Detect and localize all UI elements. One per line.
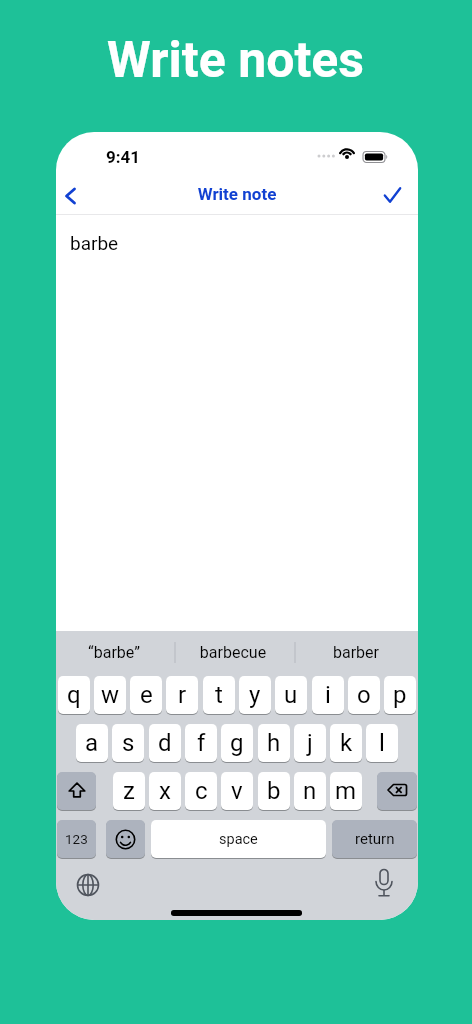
staticText: l	[379, 729, 385, 757]
staticText: u	[284, 681, 298, 709]
staticText: i	[325, 681, 331, 709]
staticText: n	[303, 777, 317, 805]
button[interactable]: x	[149, 772, 181, 810]
button[interactable]: c	[185, 772, 217, 810]
button[interactable]: t	[203, 676, 235, 714]
button[interactable]	[372, 868, 396, 902]
staticText: return	[355, 830, 395, 848]
staticText: q	[67, 681, 81, 709]
button[interactable]: s	[112, 724, 144, 762]
button[interactable]	[56, 176, 96, 212]
staticText: 9:41	[100, 147, 146, 167]
staticText: Write note	[56, 184, 418, 204]
button[interactable]: 123	[57, 820, 96, 858]
button[interactable]: a	[76, 724, 108, 762]
button[interactable]: barber	[316, 643, 396, 662]
button[interactable]: p	[384, 676, 416, 714]
staticText: k	[340, 729, 353, 757]
staticText: a	[85, 729, 99, 757]
staticText: h	[267, 729, 281, 757]
staticText: m	[335, 777, 357, 805]
staticText: o	[357, 681, 371, 709]
button[interactable]	[106, 820, 145, 858]
button[interactable]: m	[330, 772, 362, 810]
staticText: r	[178, 681, 187, 709]
button[interactable]: barbecue	[193, 643, 273, 662]
staticText: j	[307, 729, 313, 757]
staticText: e	[140, 681, 153, 709]
button[interactable]: return	[332, 820, 417, 858]
staticText: c	[195, 777, 208, 805]
button[interactable]: i	[312, 676, 344, 714]
staticText: f	[197, 729, 206, 757]
button[interactable]: r	[166, 676, 198, 714]
staticText: d	[158, 729, 172, 757]
staticText: Write notes	[107, 31, 365, 90]
staticText: v	[231, 777, 243, 805]
button[interactable]: h	[258, 724, 290, 762]
button[interactable]: b	[258, 772, 290, 810]
button[interactable]: y	[239, 676, 271, 714]
button[interactable]: j	[294, 724, 326, 762]
staticText: t	[215, 681, 223, 709]
staticText: x	[159, 777, 171, 805]
staticText: w	[101, 681, 120, 709]
button[interactable]: w	[94, 676, 126, 714]
button[interactable]	[57, 772, 96, 810]
button[interactable]: n	[294, 772, 326, 810]
button[interactable]: v	[221, 772, 253, 810]
button[interactable]: g	[221, 724, 253, 762]
staticText: z	[123, 777, 135, 805]
button[interactable]: d	[149, 724, 181, 762]
staticText: b	[267, 777, 281, 805]
staticText: g	[230, 729, 244, 757]
button[interactable]: z	[113, 772, 145, 810]
staticText: barbe	[70, 232, 119, 254]
button[interactable]: f	[185, 724, 217, 762]
button[interactable]: l	[366, 724, 398, 762]
button[interactable]: o	[348, 676, 380, 714]
staticText: space	[219, 831, 258, 848]
button[interactable]: u	[275, 676, 307, 714]
button[interactable]	[377, 772, 417, 810]
staticText: p	[393, 681, 407, 709]
button[interactable]: k	[330, 724, 362, 762]
button[interactable]: space	[151, 820, 326, 858]
button[interactable]	[374, 176, 418, 212]
staticText: s	[122, 729, 135, 757]
button[interactable]: e	[130, 676, 162, 714]
button[interactable]: “barbe”	[74, 643, 154, 662]
staticText: y	[249, 681, 261, 709]
staticText: 123	[65, 831, 88, 847]
button[interactable]	[74, 871, 102, 899]
button[interactable]: q	[58, 676, 90, 714]
